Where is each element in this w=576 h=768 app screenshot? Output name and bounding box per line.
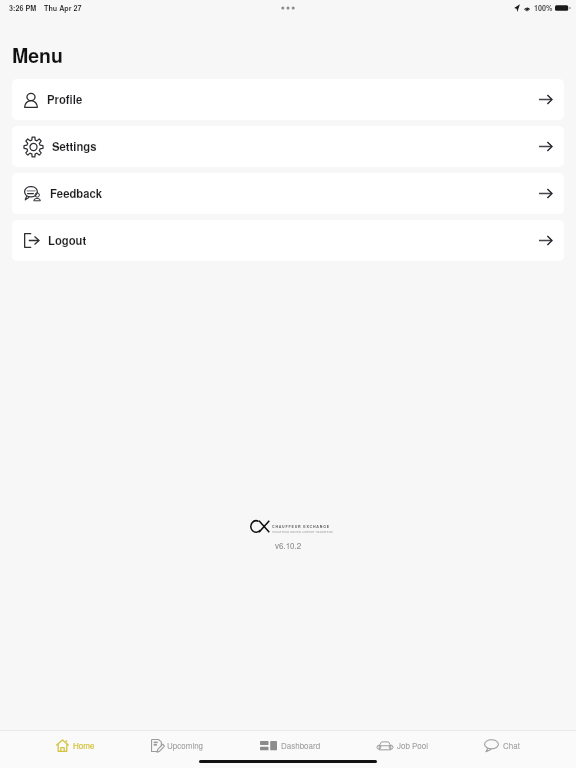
button[interactable]: Home <box>56 731 95 760</box>
staticText: Profile <box>47 91 83 107</box>
other: Open Profile <box>539 95 552 104</box>
button[interactable]: Dashboard <box>260 731 321 760</box>
button[interactable]: Chat <box>484 731 520 760</box>
staticText: CHAUFFEUR EXCHANGE <box>272 524 330 529</box>
other: Open Logout <box>539 236 552 245</box>
staticText: Job Pool <box>397 740 428 751</box>
staticText: v6.10.2 <box>275 540 302 551</box>
button[interactable]: Logout <box>12 220 564 261</box>
other: Open Settings <box>539 142 552 151</box>
staticText: Upcoming <box>167 740 204 751</box>
button[interactable]: Upcoming <box>151 731 204 760</box>
staticText: CHAUFFEUR DRIVEN AIRPORT TRANSFERS <box>272 530 333 533</box>
staticText: Home <box>73 740 95 751</box>
staticText: 3:26 PM <box>9 3 37 13</box>
staticText: Feedback <box>50 185 103 201</box>
staticText: Logout <box>48 232 87 248</box>
staticText: Settings <box>52 138 97 154</box>
button[interactable]: Job Pool <box>377 731 428 760</box>
button[interactable]: Profile <box>12 79 564 120</box>
staticText: Menu <box>12 41 63 69</box>
staticText: 100% <box>534 3 553 13</box>
other: Open Feedback <box>539 189 552 198</box>
staticText: Chat <box>503 740 520 751</box>
staticText: Thu Apr 27 <box>44 3 82 13</box>
button[interactable]: Settings <box>12 126 564 167</box>
button[interactable]: Feedback <box>12 173 564 214</box>
staticText: Dashboard <box>281 740 321 751</box>
